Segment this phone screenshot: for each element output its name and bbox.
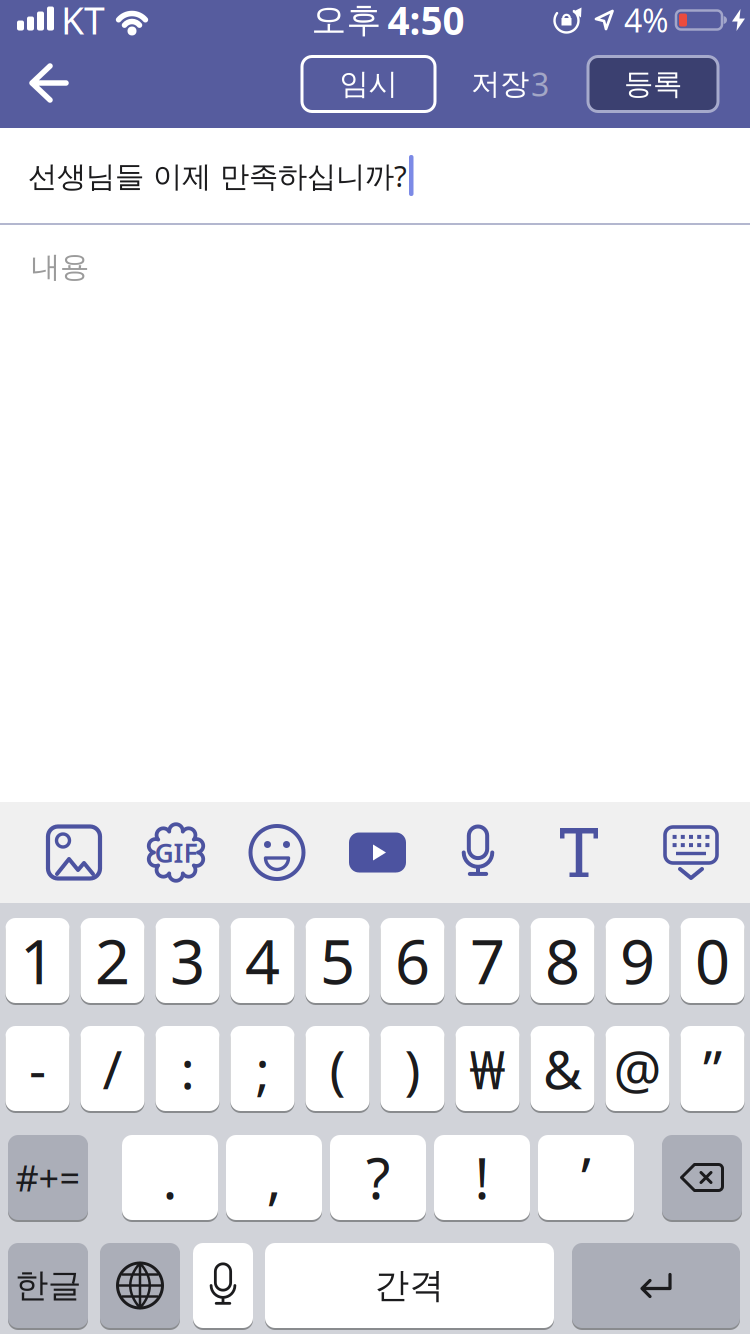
staticText: 등록: [624, 66, 682, 102]
button[interactable]: 등록: [588, 56, 718, 111]
button[interactable]: #+=: [8, 1135, 88, 1220]
staticText: ’: [581, 1140, 591, 1215]
button[interactable]: @: [605, 1026, 669, 1111]
staticText: ₩: [469, 1033, 505, 1104]
button[interactable]: ₩: [455, 1026, 519, 1111]
staticText: 한글: [15, 1265, 81, 1306]
button[interactable]: [100, 1243, 180, 1328]
button[interactable]: .: [122, 1135, 218, 1220]
button[interactable]: 저장: [471, 63, 549, 105]
staticText: /: [102, 1033, 122, 1104]
staticText: 저장: [471, 66, 529, 102]
staticText: 3: [170, 920, 205, 1001]
button[interactable]: 선생님들 이제 만족하십니까?: [0, 128, 750, 223]
button[interactable]: [663, 824, 719, 880]
button[interactable]: 3: [155, 918, 219, 1003]
staticText: 0: [695, 920, 730, 1001]
staticText: 선생님들 이제 만족하십니까?: [28, 156, 407, 195]
staticText: 7: [470, 920, 505, 1001]
staticText: -: [29, 1033, 46, 1104]
staticText: 오후: [311, 0, 381, 41]
staticText: 4: [245, 920, 280, 1001]
button[interactable]: (: [305, 1026, 369, 1111]
button[interactable]: [349, 824, 406, 880]
button[interactable]: [662, 1135, 742, 1220]
staticText: 4%: [624, 0, 669, 41]
button[interactable]: !: [434, 1135, 530, 1220]
button[interactable]: ”: [680, 1026, 744, 1111]
button[interactable]: [0, 66, 88, 102]
staticText: .: [162, 1140, 177, 1215]
staticText: ;: [255, 1033, 269, 1104]
button[interactable]: &: [530, 1026, 594, 1111]
button[interactable]: 2: [80, 918, 144, 1003]
staticText: 4:50: [387, 0, 464, 46]
button[interactable]: 8: [530, 918, 594, 1003]
button[interactable]: 간격: [265, 1243, 554, 1328]
staticText: (: [329, 1033, 345, 1104]
staticText: ,: [266, 1140, 281, 1215]
staticText: 내용: [31, 249, 89, 285]
staticText: 1: [20, 920, 55, 1001]
button[interactable]: :: [155, 1026, 219, 1111]
staticText: :: [180, 1033, 194, 1104]
button[interactable]: 6: [380, 918, 444, 1003]
button[interactable]: 내용: [0, 225, 750, 285]
button[interactable]: [450, 824, 506, 880]
staticText: 임시: [339, 66, 397, 102]
staticText: 6: [395, 920, 430, 1001]
button[interactable]: [46, 824, 102, 880]
button[interactable]: [551, 824, 607, 880]
button[interactable]: 9: [605, 918, 669, 1003]
button[interactable]: 5: [305, 918, 369, 1003]
button[interactable]: 0: [680, 918, 744, 1003]
staticText: #+=: [15, 1154, 80, 1201]
staticText: 간격: [374, 1264, 444, 1307]
staticText: ”: [703, 1033, 722, 1104]
button[interactable]: ): [380, 1026, 444, 1111]
staticText: 5: [320, 920, 355, 1001]
button[interactable]: 4: [230, 918, 294, 1003]
button[interactable]: [572, 1243, 740, 1328]
staticText: ?: [366, 1140, 390, 1215]
button[interactable]: ?: [330, 1135, 426, 1220]
button[interactable]: 7: [455, 918, 519, 1003]
button[interactable]: -: [5, 1026, 69, 1111]
staticText: GIF: [154, 835, 197, 870]
button[interactable]: ,: [226, 1135, 322, 1220]
button[interactable]: /: [80, 1026, 144, 1111]
button[interactable]: ’: [538, 1135, 634, 1220]
button[interactable]: 임시: [302, 56, 435, 111]
staticText: 2: [95, 920, 130, 1001]
staticText: ): [404, 1033, 420, 1104]
staticText: @: [613, 1033, 661, 1104]
button[interactable]: GIF: [148, 824, 204, 880]
staticText: &: [543, 1033, 582, 1104]
button[interactable]: 한글: [8, 1243, 88, 1328]
staticText: KT: [61, 0, 105, 45]
button[interactable]: 1: [5, 918, 69, 1003]
staticText: 9: [620, 920, 655, 1001]
button[interactable]: [193, 1243, 253, 1328]
staticText: 8: [545, 920, 580, 1001]
staticText: 3: [531, 63, 549, 105]
staticText: !: [474, 1140, 489, 1215]
button[interactable]: ;: [230, 1026, 294, 1111]
button[interactable]: [249, 824, 305, 880]
